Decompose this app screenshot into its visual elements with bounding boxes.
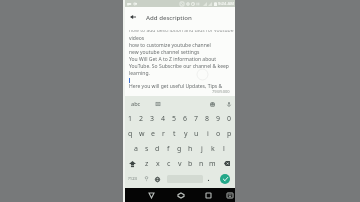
button[interactable]: Recent apps	[202, 188, 215, 202]
button[interactable]: m	[207, 156, 218, 171]
staticText: 9:24 AM	[218, 1, 235, 7]
button[interactable]: Voice input	[223, 96, 234, 112]
button[interactable]: Clipboard	[152, 96, 163, 112]
button[interactable]: 8	[202, 112, 213, 126]
staticText: u	[194, 129, 199, 139]
button[interactable]: Back	[126, 7, 139, 26]
staticText: f	[167, 144, 170, 154]
staticText: 0	[227, 114, 232, 124]
button[interactable]: l	[218, 141, 229, 156]
button[interactable]: k	[207, 141, 218, 156]
staticText: r	[162, 129, 165, 139]
staticText: how to customize youtube channel	[129, 42, 211, 49]
button[interactable]: j	[196, 141, 207, 156]
button[interactable]: Home	[174, 188, 187, 202]
button[interactable]: o	[213, 126, 224, 141]
button[interactable]: 9	[213, 112, 224, 126]
staticText: 793/5000	[212, 89, 230, 94]
button[interactable]: h	[185, 141, 196, 156]
button[interactable]: Backspace	[220, 156, 233, 171]
button[interactable]: f	[163, 141, 174, 156]
button[interactable]: 0	[224, 112, 235, 126]
staticText: You Will Get A to Z information about	[129, 56, 217, 63]
button[interactable]: p	[224, 126, 235, 141]
staticText: s	[145, 144, 149, 154]
button[interactable]: 1	[125, 112, 136, 126]
button[interactable]: abc	[127, 96, 144, 112]
button[interactable]: y	[180, 126, 191, 141]
staticText: z	[145, 159, 149, 169]
button[interactable]: 2	[136, 112, 147, 126]
button[interactable]: u	[191, 126, 202, 141]
button[interactable]: 7	[191, 112, 202, 126]
button[interactable]: ?123	[126, 171, 139, 187]
button[interactable]: Emoji keyboard	[142, 171, 151, 187]
button[interactable]: n	[196, 156, 207, 171]
staticText: abc	[131, 100, 141, 108]
button[interactable]: Enter	[216, 171, 233, 187]
button[interactable]: z	[141, 156, 152, 171]
button[interactable]: x	[152, 156, 163, 171]
button[interactable]: Hide keyboard	[224, 188, 236, 202]
button[interactable]: c	[163, 156, 174, 171]
staticText: 9	[216, 114, 221, 124]
staticText: d	[155, 144, 160, 154]
staticText: n	[199, 159, 204, 169]
button[interactable]: e	[147, 126, 158, 141]
button[interactable]: Back	[145, 188, 158, 202]
staticText: YouTube. So Subscribe our channel & keep	[129, 63, 229, 70]
staticText: 7	[194, 114, 199, 124]
button[interactable]: g	[174, 141, 185, 156]
button[interactable]: r	[158, 126, 169, 141]
button[interactable]: q	[125, 126, 136, 141]
staticText: o	[216, 129, 221, 139]
staticText: 5	[172, 114, 177, 124]
staticText: 6	[183, 114, 188, 124]
staticText: new youtube channel settings	[129, 49, 200, 56]
button[interactable]: t	[169, 126, 180, 141]
staticText: 1	[128, 114, 133, 124]
button[interactable]: b	[185, 156, 196, 171]
staticText: w	[139, 129, 145, 139]
button[interactable]: Shift	[126, 156, 139, 171]
button[interactable]: Period	[204, 171, 213, 187]
staticText: 3	[150, 114, 155, 124]
staticText: ?123	[128, 176, 138, 182]
staticText: 8	[205, 114, 210, 124]
button[interactable]: 6	[180, 112, 191, 126]
staticText: learning.	[129, 70, 150, 77]
staticText: p	[227, 129, 232, 139]
staticText: g	[177, 144, 182, 154]
staticText: 4	[161, 114, 166, 124]
staticText: e	[151, 129, 155, 139]
staticText: j	[201, 144, 203, 154]
staticText: 2	[139, 114, 144, 124]
staticText: Here you will get useful Updates, Tips &	[129, 83, 223, 90]
staticText: a	[134, 144, 138, 154]
button[interactable]: Change language	[152, 171, 162, 187]
button[interactable]: Emoji	[207, 96, 218, 112]
staticText: m	[209, 159, 216, 169]
staticText: y	[184, 129, 188, 139]
staticText: t	[173, 129, 176, 139]
staticText: x	[156, 159, 160, 169]
staticText: videos	[129, 35, 145, 42]
button[interactable]: a	[131, 141, 141, 156]
staticText: k	[211, 144, 215, 154]
staticText: how to add description and tags for yout…	[129, 30, 234, 32]
button[interactable]: 3	[147, 112, 158, 126]
button[interactable]: s	[141, 141, 152, 156]
staticText: i	[207, 129, 209, 139]
button[interactable]: w	[136, 126, 147, 141]
staticText: v	[178, 159, 182, 169]
staticText: c	[167, 159, 171, 169]
button[interactable]: 5	[169, 112, 180, 126]
staticText: b	[188, 159, 193, 169]
staticText: h	[188, 144, 193, 154]
button[interactable]: d	[152, 141, 163, 156]
staticText: l	[223, 144, 225, 154]
button[interactable]: i	[202, 126, 213, 141]
button[interactable]: v	[174, 156, 185, 171]
button[interactable]: 4	[158, 112, 169, 126]
